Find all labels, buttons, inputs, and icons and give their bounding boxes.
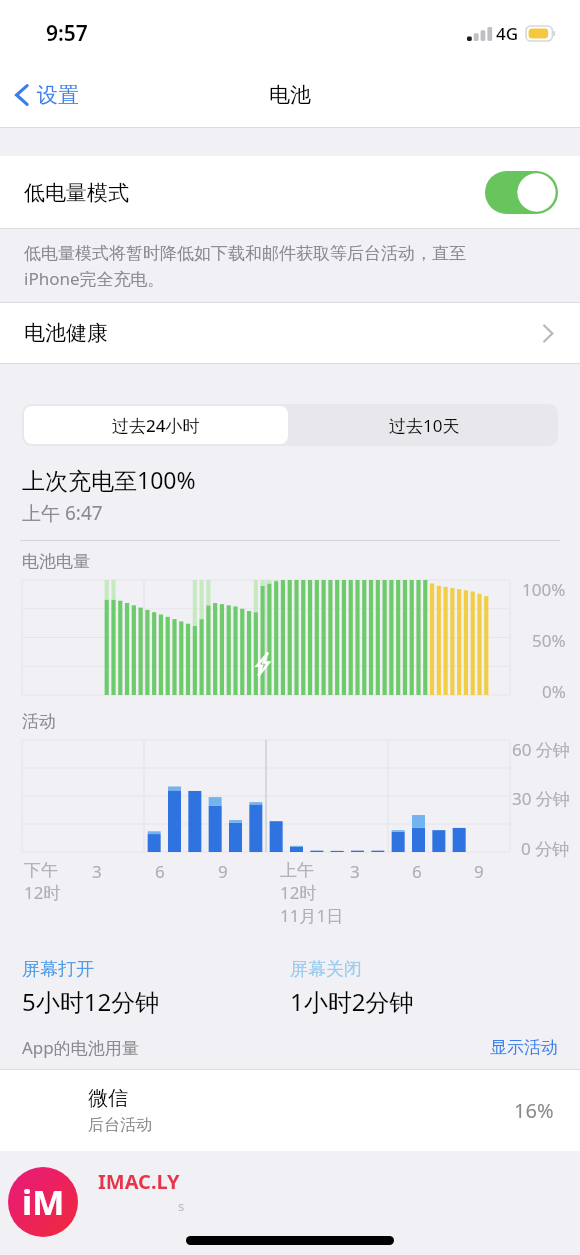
- staticText: 11月1日: [280, 904, 344, 927]
- staticText: 3: [92, 860, 102, 883]
- staticText: 9: [474, 860, 484, 883]
- staticText: 设置: [37, 82, 79, 108]
- staticText: 6: [412, 860, 422, 883]
- staticText: 后台活动: [88, 1115, 152, 1135]
- staticText: 4G: [496, 22, 519, 45]
- button[interactable]: 显示活动: [490, 1037, 558, 1058]
- button[interactable]: 过去24小时: [24, 406, 288, 444]
- staticText: 5小时12分钟: [22, 985, 160, 1018]
- other: Battery Health: [542, 323, 554, 344]
- staticText: 上午 6:47: [22, 500, 103, 526]
- staticText: iPhone完全充电。: [24, 267, 165, 290]
- staticText: 12时: [24, 881, 61, 904]
- staticText: 100%: [522, 578, 566, 601]
- staticText: 屏幕关闭: [290, 958, 362, 981]
- staticText: s: [178, 1197, 185, 1215]
- button[interactable]: 微信: [0, 1069, 580, 1151]
- staticText: iM: [22, 1179, 65, 1225]
- staticText: 低电量模式: [24, 180, 129, 206]
- staticText: App的电池用量: [22, 1036, 139, 1059]
- button[interactable]: 低电量模式: [0, 156, 580, 229]
- staticText: 6: [155, 860, 165, 883]
- staticText: 上次充电至100%: [22, 464, 196, 495]
- button[interactable]: 电池健康: [0, 302, 580, 364]
- staticText: 上午: [280, 860, 314, 881]
- staticText: 9: [218, 860, 228, 883]
- staticText: 低电量模式将暂时降低如下载和邮件获取等后台活动，直至: [24, 243, 466, 264]
- other: Back: [14, 82, 30, 108]
- staticText: 过去10天: [389, 414, 460, 437]
- staticText: 12时: [280, 881, 317, 904]
- staticText: 50%: [532, 629, 566, 652]
- staticText: 3: [350, 860, 360, 883]
- staticText: 过去24小时: [112, 414, 200, 437]
- staticText: 0%: [542, 680, 566, 703]
- staticText: 电池: [269, 82, 311, 108]
- staticText: 屏幕打开: [22, 958, 94, 981]
- staticText: 微信: [88, 1086, 128, 1111]
- staticText: 60 分钟: [512, 738, 570, 761]
- staticText: 30 分钟: [512, 787, 570, 810]
- staticText: 0 分钟: [521, 837, 570, 860]
- staticText: 活动: [22, 711, 56, 732]
- staticText: 电池健康: [24, 320, 108, 346]
- button[interactable]: 过去10天: [290, 404, 558, 446]
- staticText: 9:57: [46, 19, 88, 48]
- staticText: IMAC.LY: [98, 1168, 180, 1195]
- staticText: 下午: [24, 860, 58, 881]
- staticText: 16%: [514, 1097, 554, 1124]
- button[interactable]: Back: [14, 82, 79, 108]
- staticText: 电池电量: [22, 551, 90, 572]
- staticText: 1小时2分钟: [290, 985, 414, 1018]
